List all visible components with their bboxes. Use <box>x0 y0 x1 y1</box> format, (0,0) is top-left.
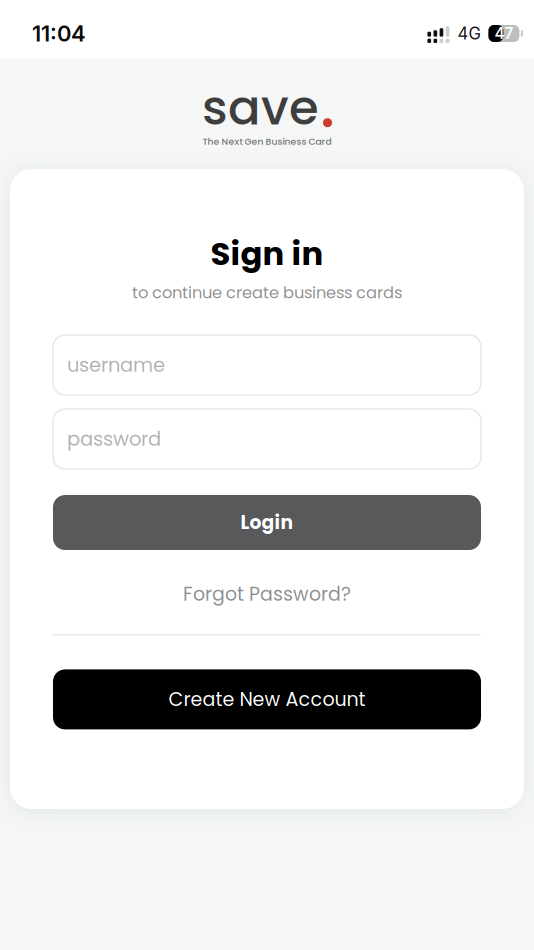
staticText: password <box>67 425 161 453</box>
button[interactable]: Create New Account <box>53 669 481 729</box>
staticText: 47 <box>494 24 513 43</box>
button[interactable]: Forgot Password? <box>53 577 481 611</box>
staticText: The Next Gen Business Card <box>202 135 331 148</box>
staticText: to continue create business cards <box>132 281 402 304</box>
staticText: Create New Account <box>168 686 365 713</box>
staticText: save <box>202 74 319 141</box>
staticText: 11:04 <box>32 20 86 47</box>
button[interactable]: username <box>53 335 481 395</box>
staticText: 4G <box>457 23 480 44</box>
staticText: Login <box>240 509 293 536</box>
staticText: username <box>67 351 165 379</box>
staticText: Sign in <box>210 231 323 276</box>
staticText: Forgot Password? <box>183 581 351 607</box>
button[interactable]: password <box>53 409 481 469</box>
button[interactable]: Login <box>53 495 481 550</box>
